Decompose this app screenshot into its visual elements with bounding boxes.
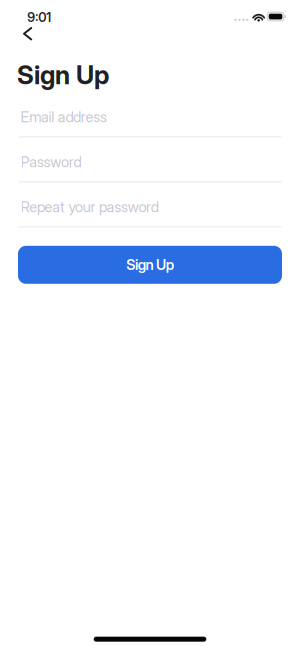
staticText: Password [20,153,81,171]
staticText: 9:01 [27,9,51,25]
textField[interactable]: Repeat your password [18,182,281,227]
staticText: Repeat your password [20,198,159,216]
textField[interactable]: Email address [18,92,281,137]
button[interactable]: Sign Up [18,246,282,284]
staticText: Sign Up [126,256,174,273]
staticText: Email address [20,108,107,126]
button[interactable]: Back [19,25,37,43]
textField[interactable]: Password [18,137,281,182]
staticText: Sign Up [17,59,109,90]
